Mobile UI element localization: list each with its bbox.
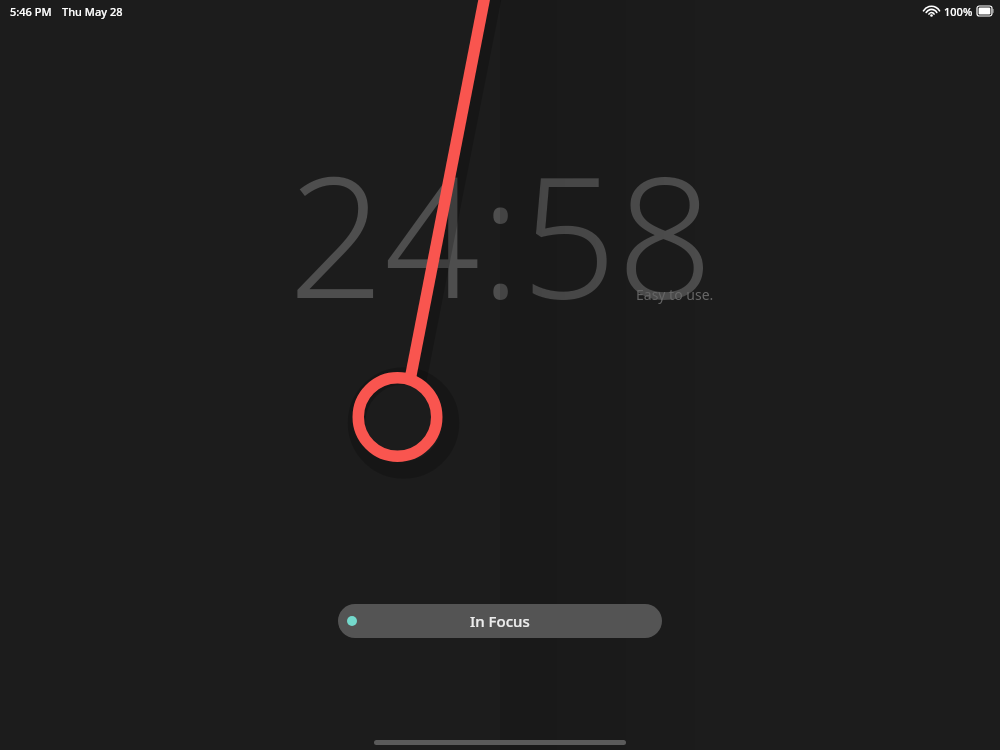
button[interactable]: In Focus — [338, 604, 662, 638]
staticText: In Focus — [470, 611, 530, 631]
staticText: Thu May 28 — [62, 4, 123, 19]
staticText: Easy to use. — [636, 285, 714, 304]
staticText: 5:46 PM — [10, 4, 52, 19]
other: Battery full — [977, 6, 994, 16]
staticText: 24:58 — [288, 118, 713, 347]
other: Wi-Fi — [924, 5, 939, 17]
staticText: 100% — [944, 4, 973, 19]
